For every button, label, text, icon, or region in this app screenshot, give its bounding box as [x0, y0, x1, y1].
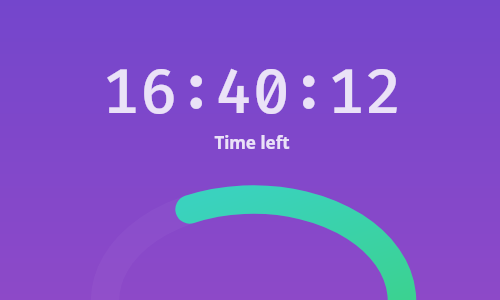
other: Timer progress: [0, 0, 500, 300]
staticText: 16:40:12: [102, 57, 403, 132]
button[interactable]: 16:40:12: [2, 57, 500, 155]
staticText: Time left: [214, 131, 290, 154]
